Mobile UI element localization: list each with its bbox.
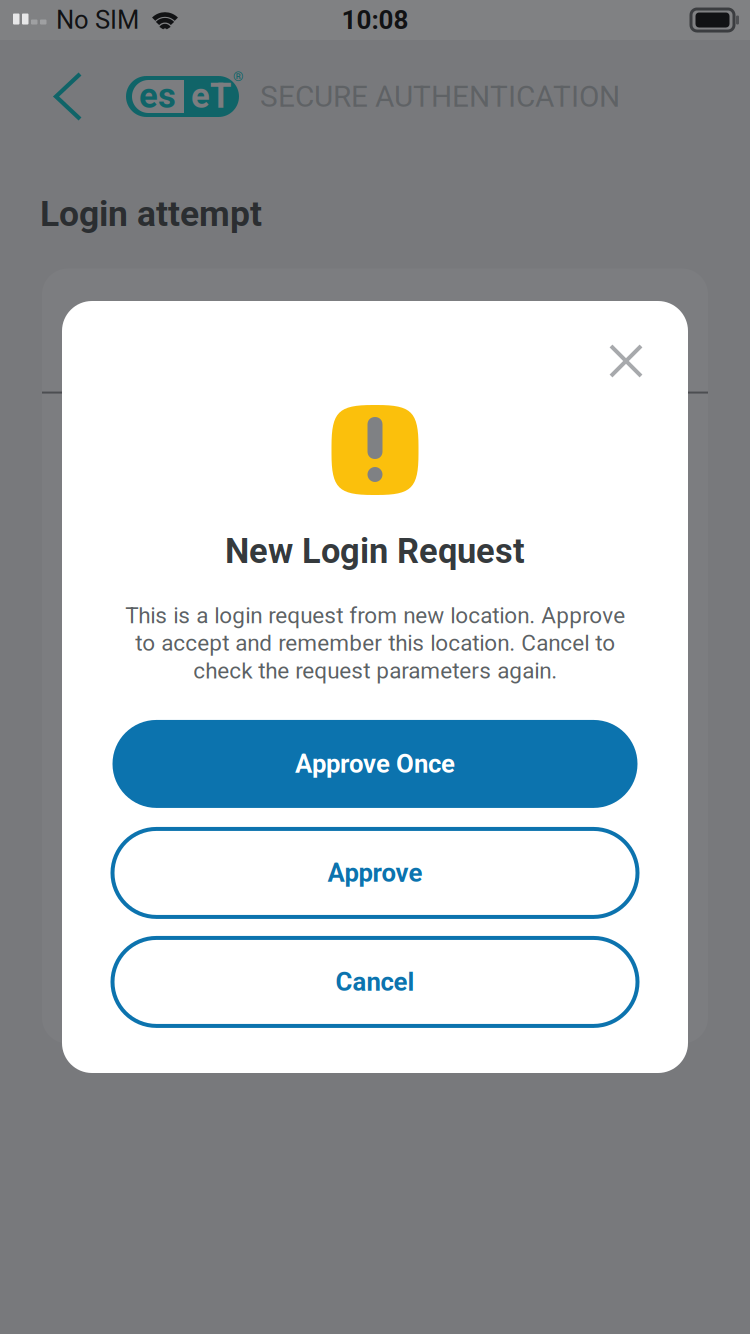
staticText: Approve [327, 858, 422, 888]
button[interactable]: Back [40, 54, 96, 139]
button[interactable]: Cancel [112, 938, 637, 1026]
staticText: ® [233, 69, 243, 85]
staticText: Cancel [335, 967, 414, 997]
staticText: eT [191, 76, 231, 116]
staticText: 10:08 [341, 5, 408, 35]
staticText: No SIM [56, 5, 139, 35]
staticText: This is a login request from new locatio… [125, 602, 625, 684]
staticText: Approve Once [295, 749, 455, 779]
staticText: SECURE AUTHENTICATION [260, 79, 620, 114]
button[interactable]: Approve [112, 829, 637, 917]
staticText: Login attempt [40, 193, 262, 235]
staticText: es [139, 76, 176, 116]
button[interactable]: Close [595, 330, 657, 392]
staticText: New Login Request [225, 531, 525, 571]
button[interactable]: Approve Once [112, 720, 637, 808]
